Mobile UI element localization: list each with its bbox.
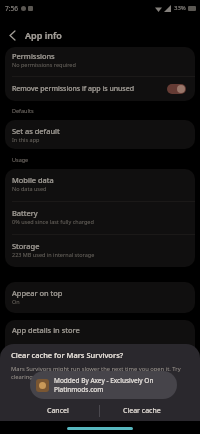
staticText: Remove permissions if app is unused [12, 84, 134, 94]
button[interactable]: Battery [5, 202, 195, 234]
button[interactable]: Set as default [5, 120, 195, 149]
staticText: Platinmods.com [54, 385, 104, 394]
button[interactable]: Cancel [16, 401, 99, 421]
staticText: Usage [12, 156, 29, 163]
staticText: App details in store [12, 325, 80, 335]
button[interactable]: App info [0, 16, 200, 47]
staticText: clearing data if problems continue after… [11, 373, 172, 381]
staticText: Modded By Axey - Exclusively On [54, 376, 154, 385]
staticText: Defaults [12, 107, 34, 114]
staticText: Cancel [47, 406, 69, 416]
staticText: In this app [12, 136, 40, 143]
button[interactable]: Appear on top [5, 282, 195, 313]
staticText: Battery [12, 208, 38, 218]
staticText: 0% used since last fully charged [12, 218, 94, 225]
button[interactable]: Storage [5, 235, 195, 267]
staticText: Clear cache [123, 406, 161, 416]
staticText: Mars Survivors might run slower the next… [11, 365, 181, 373]
staticText: 7:56 [5, 4, 18, 13]
staticText: No data used [12, 185, 47, 192]
staticText: 33% [174, 4, 186, 12]
staticText: Mobile data [12, 175, 54, 185]
button[interactable]: App details in store [5, 320, 195, 360]
button[interactable]: Mobile data [5, 169, 195, 201]
staticText: No permissions required [12, 61, 76, 68]
staticText: Clear cache for Mars Survivors? [11, 350, 124, 360]
staticText: Storage [12, 241, 40, 251]
staticText: Set as default [12, 126, 60, 136]
staticText: Permissions [12, 51, 55, 61]
button[interactable]: Clear cache [100, 401, 184, 421]
button[interactable]: Permissions [5, 47, 195, 76]
staticText: App info [25, 29, 62, 41]
staticText: 223 MB used in internal storage [12, 251, 95, 258]
staticText: On [12, 298, 20, 305]
staticText: Appear on top [12, 288, 63, 298]
button[interactable]: Remove permissions if app is unused [5, 77, 195, 101]
